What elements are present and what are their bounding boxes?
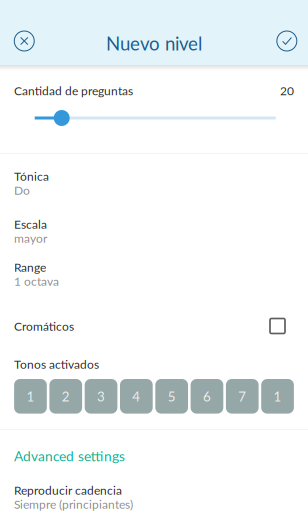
staticText: 2 bbox=[62, 388, 70, 404]
button[interactable]: 2 bbox=[49, 379, 82, 414]
button[interactable]: 6 bbox=[191, 379, 223, 414]
staticText: Escala bbox=[14, 217, 47, 231]
staticText: Cromáticos bbox=[14, 319, 74, 333]
staticText: Do bbox=[14, 183, 30, 197]
staticText: Cantidad de preguntas bbox=[14, 83, 133, 98]
button[interactable]: 5 bbox=[155, 379, 188, 414]
button[interactable]: 3 bbox=[85, 379, 117, 414]
button[interactable]: 1 bbox=[14, 379, 47, 414]
button[interactable]: 1 bbox=[261, 379, 294, 414]
staticText: Nuevo nivel bbox=[106, 32, 202, 54]
staticText: Tonos activados bbox=[14, 357, 99, 371]
staticText: 7 bbox=[238, 388, 246, 404]
button[interactable]: Range bbox=[14, 260, 294, 288]
button[interactable]: Cromáticos bbox=[0, 318, 308, 334]
button[interactable]: Guardar bbox=[267, 21, 307, 61]
button[interactable]: 7 bbox=[226, 379, 259, 414]
staticText: Reproducir cadencia bbox=[14, 483, 122, 497]
button[interactable]: 4 bbox=[120, 379, 153, 414]
staticText: 1 bbox=[274, 388, 282, 404]
button[interactable]: Escala bbox=[14, 217, 294, 245]
staticText: 3 bbox=[97, 388, 105, 404]
button[interactable]: Tónica bbox=[14, 169, 294, 197]
button[interactable]: Advanced settings bbox=[14, 448, 294, 464]
staticText: Siempre (principiantes) bbox=[14, 497, 133, 511]
staticText: 4 bbox=[132, 388, 140, 404]
staticText: Range bbox=[14, 260, 46, 274]
staticText: 20 bbox=[280, 83, 294, 98]
staticText: 1 octava bbox=[14, 274, 59, 288]
staticText: 5 bbox=[168, 388, 176, 404]
button[interactable]: Reproducir cadencia bbox=[14, 483, 294, 511]
staticText: 1 bbox=[26, 388, 34, 404]
staticText: Tónica bbox=[14, 169, 49, 183]
staticText: 6 bbox=[203, 388, 211, 404]
button[interactable]: Cancelar bbox=[4, 21, 44, 61]
staticText: Advanced settings bbox=[14, 448, 125, 464]
staticText: mayor bbox=[14, 231, 47, 245]
